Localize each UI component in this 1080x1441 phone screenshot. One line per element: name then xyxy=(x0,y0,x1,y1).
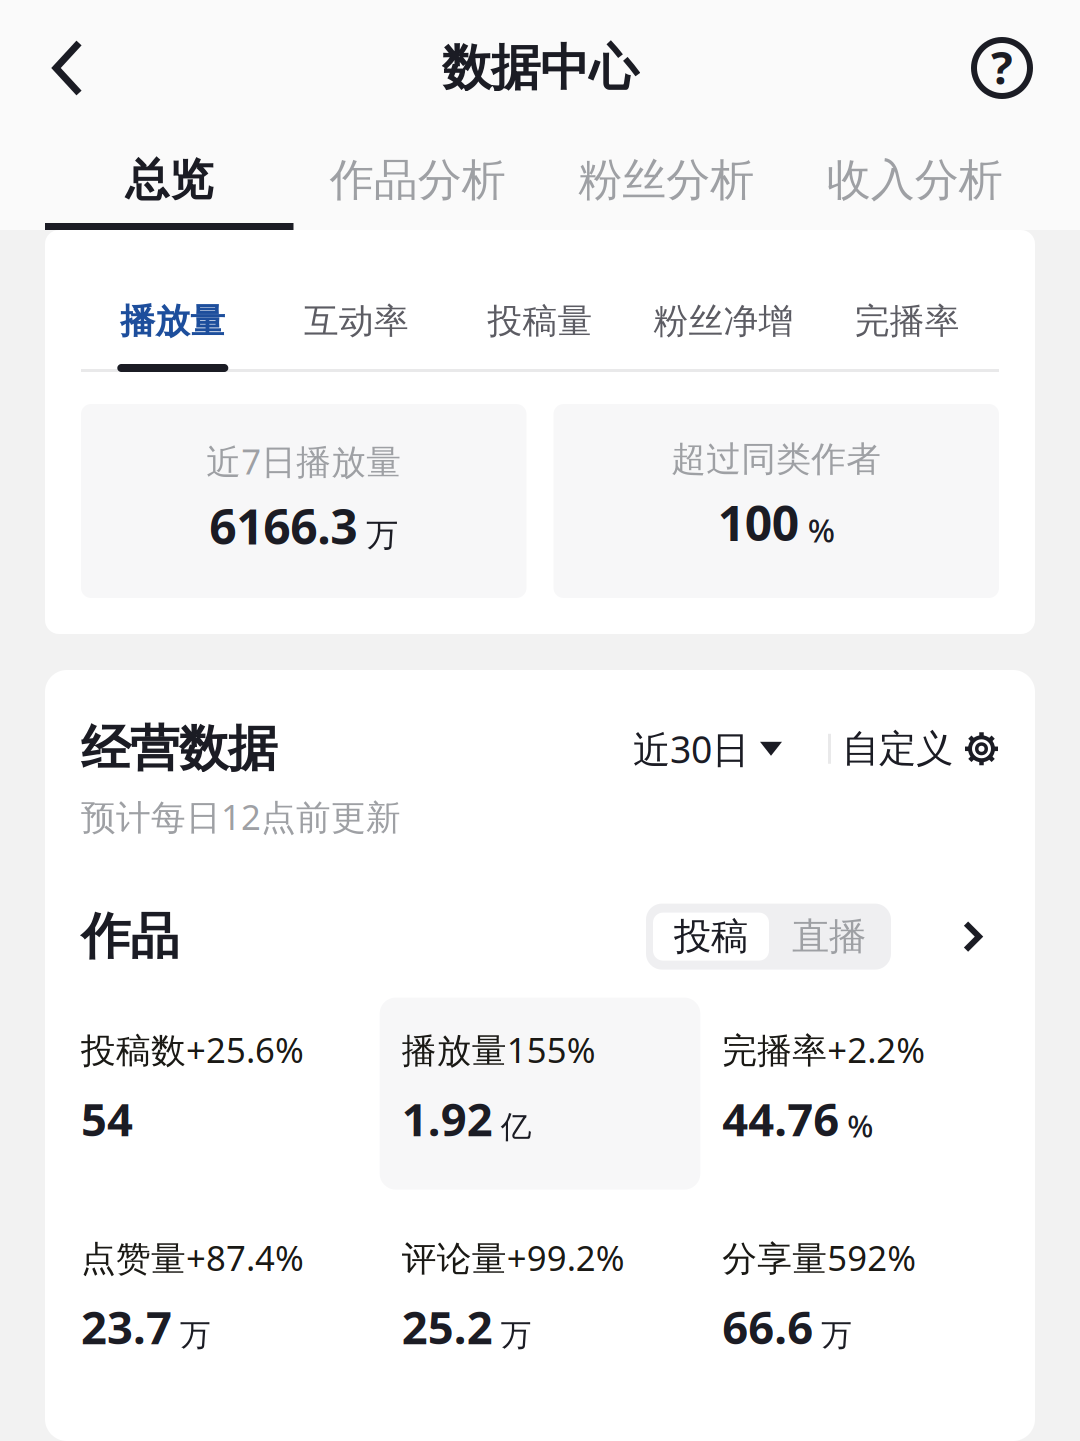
staticText: 万 xyxy=(501,1316,532,1354)
button[interactable]: 近30日 xyxy=(633,714,782,784)
staticText: 25.2 xyxy=(402,1297,493,1357)
staticText: 点赞量+87.4% xyxy=(81,1235,304,1281)
staticText: 万 xyxy=(366,515,398,555)
button[interactable]: 总览 xyxy=(45,130,293,230)
button[interactable]: Help xyxy=(951,23,1053,113)
staticText: 54 xyxy=(81,1089,133,1149)
staticText: 投稿量 xyxy=(487,300,592,343)
staticText: 66.6 xyxy=(722,1297,813,1357)
button[interactable]: 粉丝净增 xyxy=(632,300,815,372)
button[interactable]: 播放量 xyxy=(81,300,265,372)
button[interactable]: 投稿量 xyxy=(448,300,632,372)
staticText: 作品 xyxy=(81,906,179,967)
staticText: 粉丝分析 xyxy=(578,153,754,207)
staticText: 近30日 xyxy=(633,724,749,774)
staticText: ? xyxy=(991,37,1013,97)
button[interactable]: 作品分析 xyxy=(293,130,542,230)
staticText: 总览 xyxy=(125,153,213,207)
staticText: 万 xyxy=(180,1316,211,1354)
staticText: 自定义 xyxy=(842,726,953,772)
button[interactable]: 完播率 xyxy=(815,300,999,372)
staticText: 亿 xyxy=(501,1108,532,1146)
staticText: 粉丝净增 xyxy=(654,300,794,343)
staticText: 互动率 xyxy=(304,300,409,343)
staticText: 44.76 xyxy=(722,1089,839,1149)
staticText: 数据中心 xyxy=(442,38,638,98)
staticText: 播放量 xyxy=(120,300,225,343)
staticText: 收入分析 xyxy=(827,153,1003,207)
staticText: 近7日播放量 xyxy=(206,438,401,484)
button[interactable]: More xyxy=(891,907,999,967)
staticText: 经营数据 xyxy=(81,718,277,779)
staticText: % xyxy=(808,509,835,551)
button[interactable]: 收入分析 xyxy=(790,130,1039,230)
button[interactable]: 自定义 xyxy=(842,716,999,782)
staticText: 万 xyxy=(821,1316,852,1354)
staticText: % xyxy=(847,1105,873,1146)
staticText: 1.92 xyxy=(402,1089,493,1149)
staticText: 分享量592% xyxy=(722,1235,916,1281)
button[interactable]: 直播 xyxy=(769,913,889,961)
staticText: 完播率+2.2% xyxy=(722,1027,925,1073)
button[interactable]: 粉丝分析 xyxy=(542,130,790,230)
staticText: 预计每日12点前更新 xyxy=(81,794,401,840)
staticText: 投稿数+25.6% xyxy=(81,1027,304,1073)
staticText: 完播率 xyxy=(855,300,960,343)
button[interactable]: 互动率 xyxy=(265,300,448,372)
staticText: 100 xyxy=(718,491,799,554)
staticText: 播放量155% xyxy=(402,1027,596,1073)
staticText: 23.7 xyxy=(81,1297,172,1357)
staticText: 直播 xyxy=(792,914,866,960)
button[interactable]: Back xyxy=(25,23,110,113)
staticText: 作品分析 xyxy=(330,153,506,207)
staticText: 评论量+99.2% xyxy=(402,1235,625,1281)
button[interactable]: 投稿 xyxy=(653,913,769,961)
staticText: 6166.3 xyxy=(209,494,357,558)
staticText: 投稿 xyxy=(674,914,748,960)
staticText: 超过同类作者 xyxy=(671,438,881,481)
